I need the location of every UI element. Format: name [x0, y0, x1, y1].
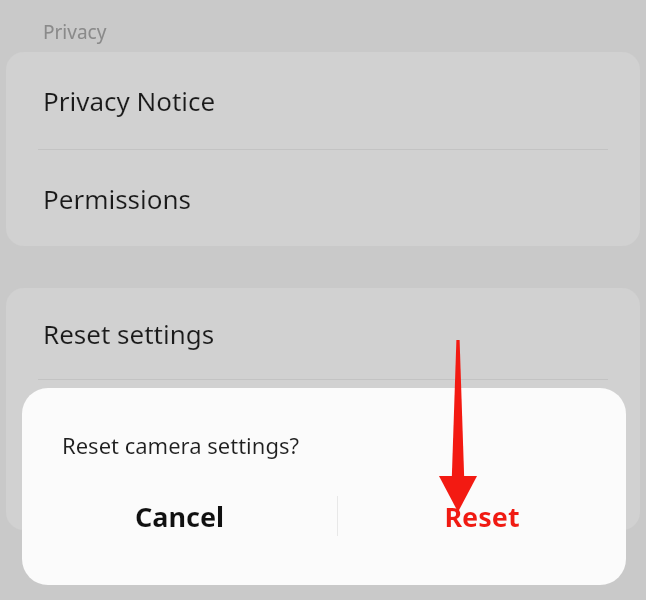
button[interactable]: Reset settings [6, 288, 640, 379]
button[interactable]: Privacy Notice [6, 52, 640, 149]
staticText: Privacy Notice [43, 83, 216, 118]
staticText: Reset [444, 498, 520, 535]
staticText: Reset camera settings? [62, 430, 300, 460]
button[interactable]: Reset [338, 486, 626, 546]
button[interactable]: Permissions [6, 150, 640, 246]
staticText: Permissions [43, 181, 192, 216]
button[interactable]: Cancel [22, 486, 337, 546]
staticText: Cancel [135, 498, 225, 535]
staticText: Privacy [43, 19, 107, 45]
staticText: Reset settings [43, 316, 215, 351]
other: Annotation arrow pointing to Reset [436, 338, 482, 518]
